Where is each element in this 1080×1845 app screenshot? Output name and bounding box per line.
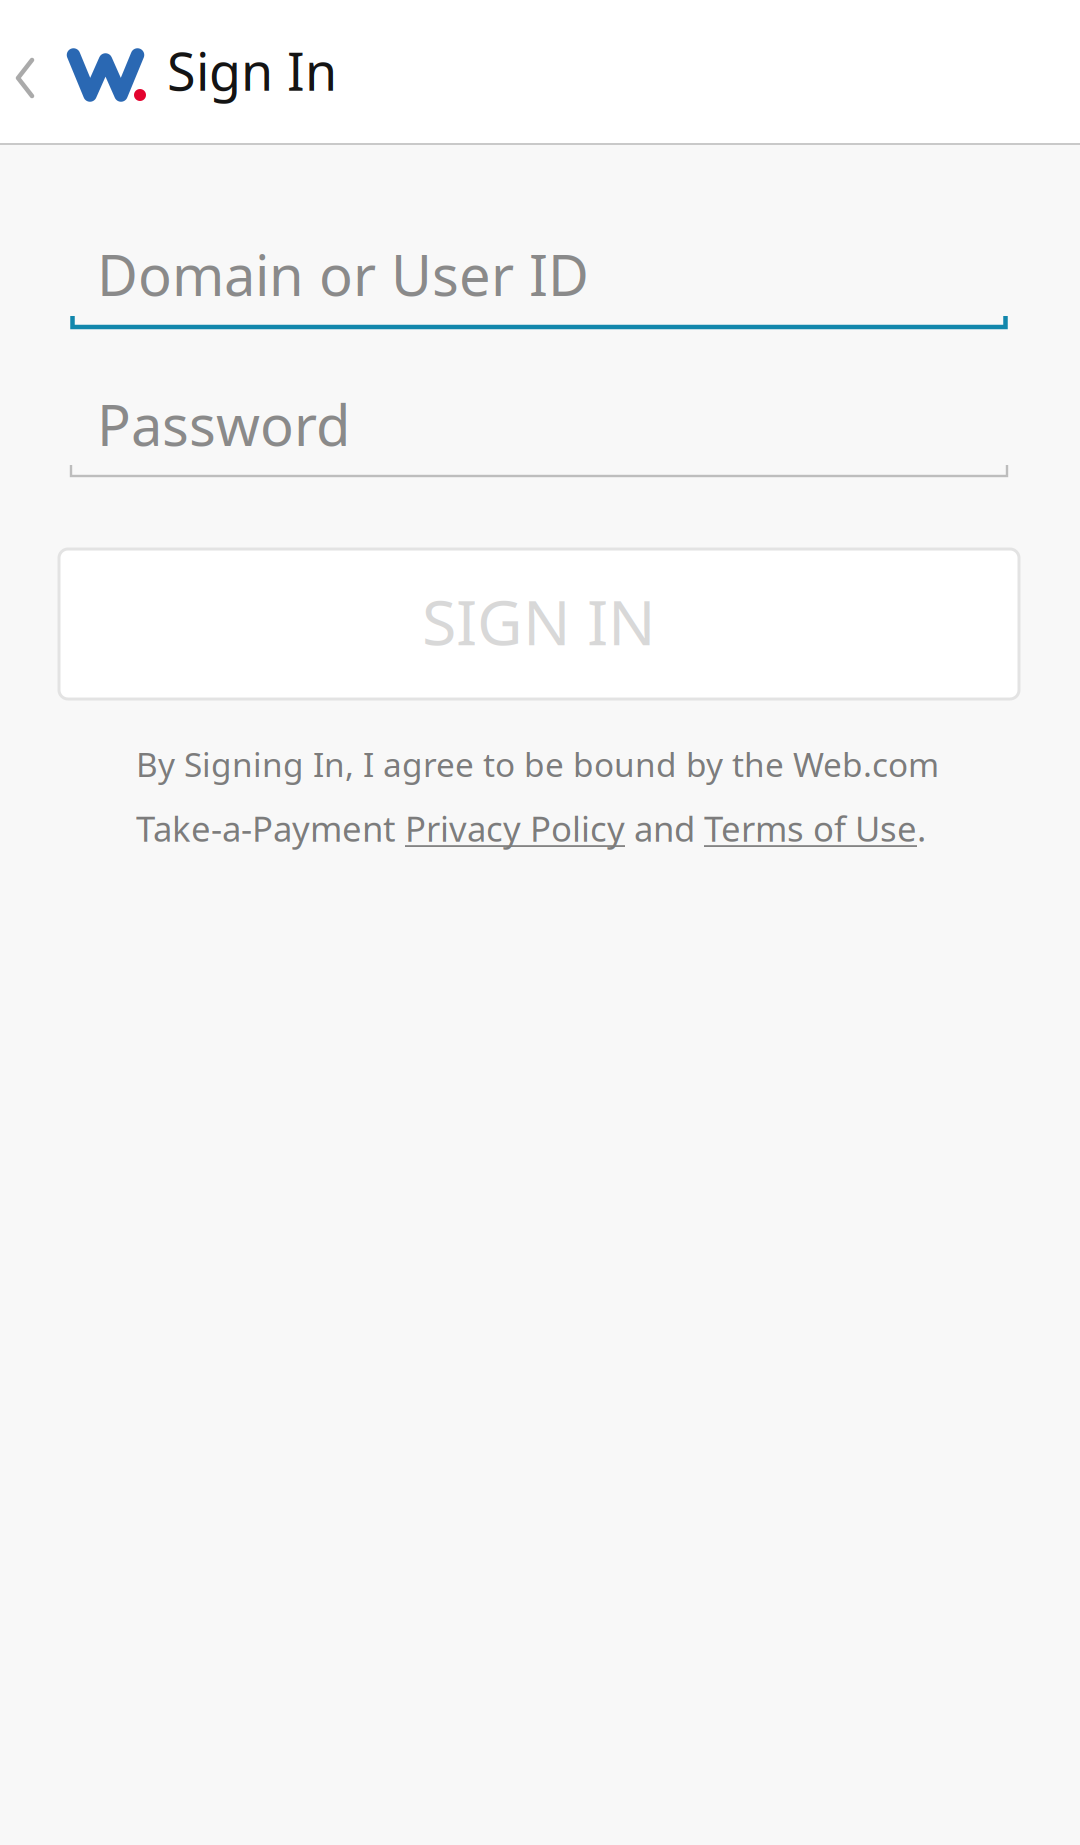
staticText: Take-a-Payment Privacy Policy and Terms … xyxy=(136,805,926,851)
button[interactable]: Password xyxy=(70,387,1008,482)
button[interactable]: Terms of Use xyxy=(704,810,917,852)
staticText: SIGN IN xyxy=(422,579,656,663)
staticText: By Signing In, I agree to be bound by th… xyxy=(136,742,939,786)
staticText: Password xyxy=(97,387,350,461)
button[interactable]: Privacy Policy xyxy=(405,810,625,852)
button[interactable]: SIGN IN xyxy=(59,549,1019,699)
staticText: Domain or User ID xyxy=(97,237,589,311)
button[interactable]: Back xyxy=(0,0,62,143)
button[interactable]: Domain or User ID xyxy=(70,237,1008,332)
staticText: Sign In xyxy=(167,36,337,105)
